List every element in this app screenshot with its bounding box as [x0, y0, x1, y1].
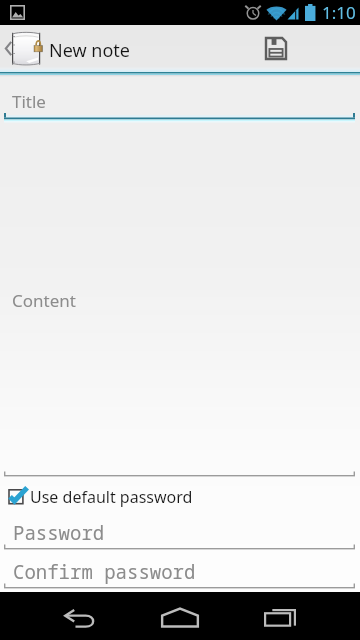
button[interactable]: Confirm password [0, 552, 360, 591]
button[interactable]: Recent apps [240, 592, 320, 640]
staticText: Password [13, 520, 105, 546]
button[interactable]: Home [140, 592, 220, 640]
staticText: Title [12, 90, 46, 113]
button[interactable]: Back [39, 592, 119, 640]
button[interactable]: Navigate up [0, 25, 140, 72]
button[interactable]: Content [0, 122, 360, 479]
staticText: Confirm password [13, 559, 196, 585]
staticText: 1:10 [322, 1, 356, 24]
button[interactable]: Use default password [0, 479, 360, 511]
button[interactable]: Title [0, 77, 360, 122]
button[interactable]: Save [253, 25, 299, 72]
button[interactable]: Password [0, 511, 360, 552]
staticText: New note [49, 38, 130, 63]
staticText: Use default password [30, 486, 193, 508]
staticText: Content [12, 289, 76, 312]
